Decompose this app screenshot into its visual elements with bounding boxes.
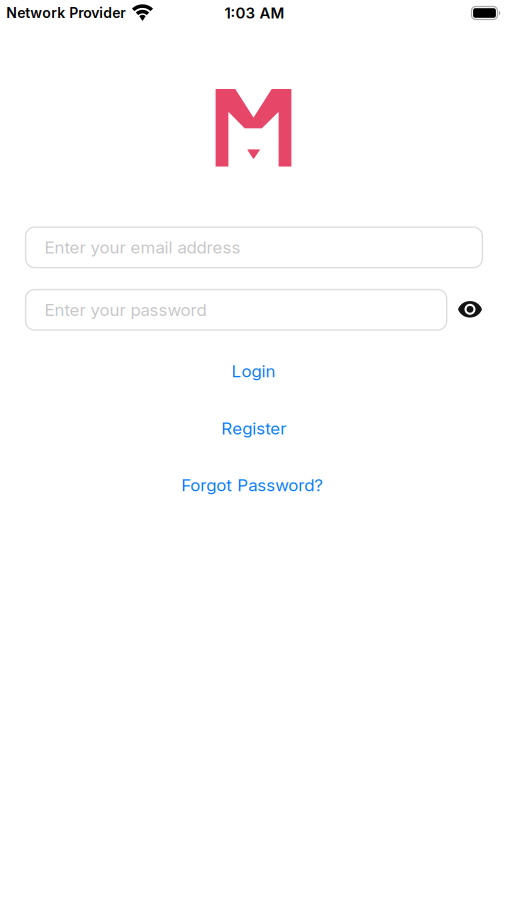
staticText: Register: [221, 418, 286, 438]
staticText: Enter your password: [45, 300, 207, 320]
button[interactable]: Register: [221, 418, 286, 438]
staticText: Forgot Password?: [181, 475, 323, 495]
button[interactable]: Enter your email address: [26, 227, 482, 268]
button[interactable]: Enter your password: [26, 290, 447, 330]
button[interactable]: Login: [231, 361, 275, 381]
staticText: Login: [231, 361, 275, 381]
staticText: Network Provider: [6, 5, 126, 21]
button[interactable]: Forgot Password?: [181, 475, 323, 495]
staticText: 1:03 AM: [224, 4, 284, 22]
staticText: Enter your email address: [45, 237, 241, 257]
button[interactable]: [458, 301, 482, 318]
